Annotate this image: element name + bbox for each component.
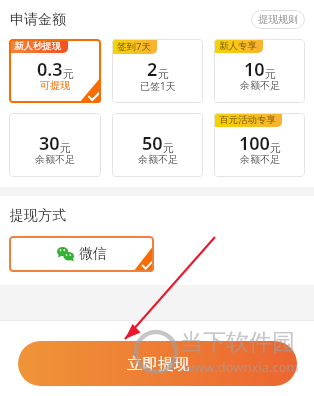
staticText: 可提现 [40, 79, 70, 92]
button[interactable]: 100 [214, 113, 305, 177]
staticText: 元 [158, 67, 169, 81]
staticText: 元 [265, 67, 276, 81]
staticText: 50 [142, 131, 163, 156]
button[interactable]: 微信 [9, 236, 154, 272]
staticText: 2 [147, 57, 158, 82]
staticText: 0.3 [37, 57, 63, 82]
staticText: 100 [239, 131, 270, 156]
staticText: 签到7天 [117, 40, 151, 53]
button[interactable]: 30 [9, 113, 101, 177]
staticText: www.downxia.com [184, 358, 299, 376]
staticText: 当下软件园 [180, 328, 295, 357]
staticText: 新人秒提现 [14, 40, 62, 52]
staticText: 新人专享 [219, 40, 257, 52]
button[interactable]: 立即提现 [18, 341, 297, 386]
staticText: 30 [39, 131, 60, 156]
staticText: 余额不足 [138, 153, 178, 166]
staticText: 元 [163, 141, 174, 155]
button[interactable]: 2 [112, 39, 203, 103]
staticText: 余额不足 [240, 79, 280, 92]
staticText: 余额不足 [240, 153, 280, 166]
staticText: 百元活动专享 [219, 114, 276, 126]
staticText: 余额不足 [35, 153, 75, 166]
staticText: 立即提现 [127, 354, 189, 374]
staticText: 申请金额 [10, 11, 66, 29]
staticText: 元 [270, 141, 281, 155]
button[interactable]: 50 [112, 113, 203, 177]
button[interactable]: 0.3 [9, 39, 101, 103]
staticText: 提现规则 [258, 13, 298, 26]
button[interactable]: 10 [214, 39, 305, 103]
staticText: 元 [63, 67, 74, 81]
staticText: 元 [60, 141, 71, 155]
staticText: 已签1天 [140, 79, 176, 93]
staticText: 提现方式 [10, 207, 66, 225]
button[interactable]: 提现规则 [251, 10, 305, 29]
staticText: 微信 [79, 245, 107, 263]
staticText: 10 [244, 57, 265, 82]
